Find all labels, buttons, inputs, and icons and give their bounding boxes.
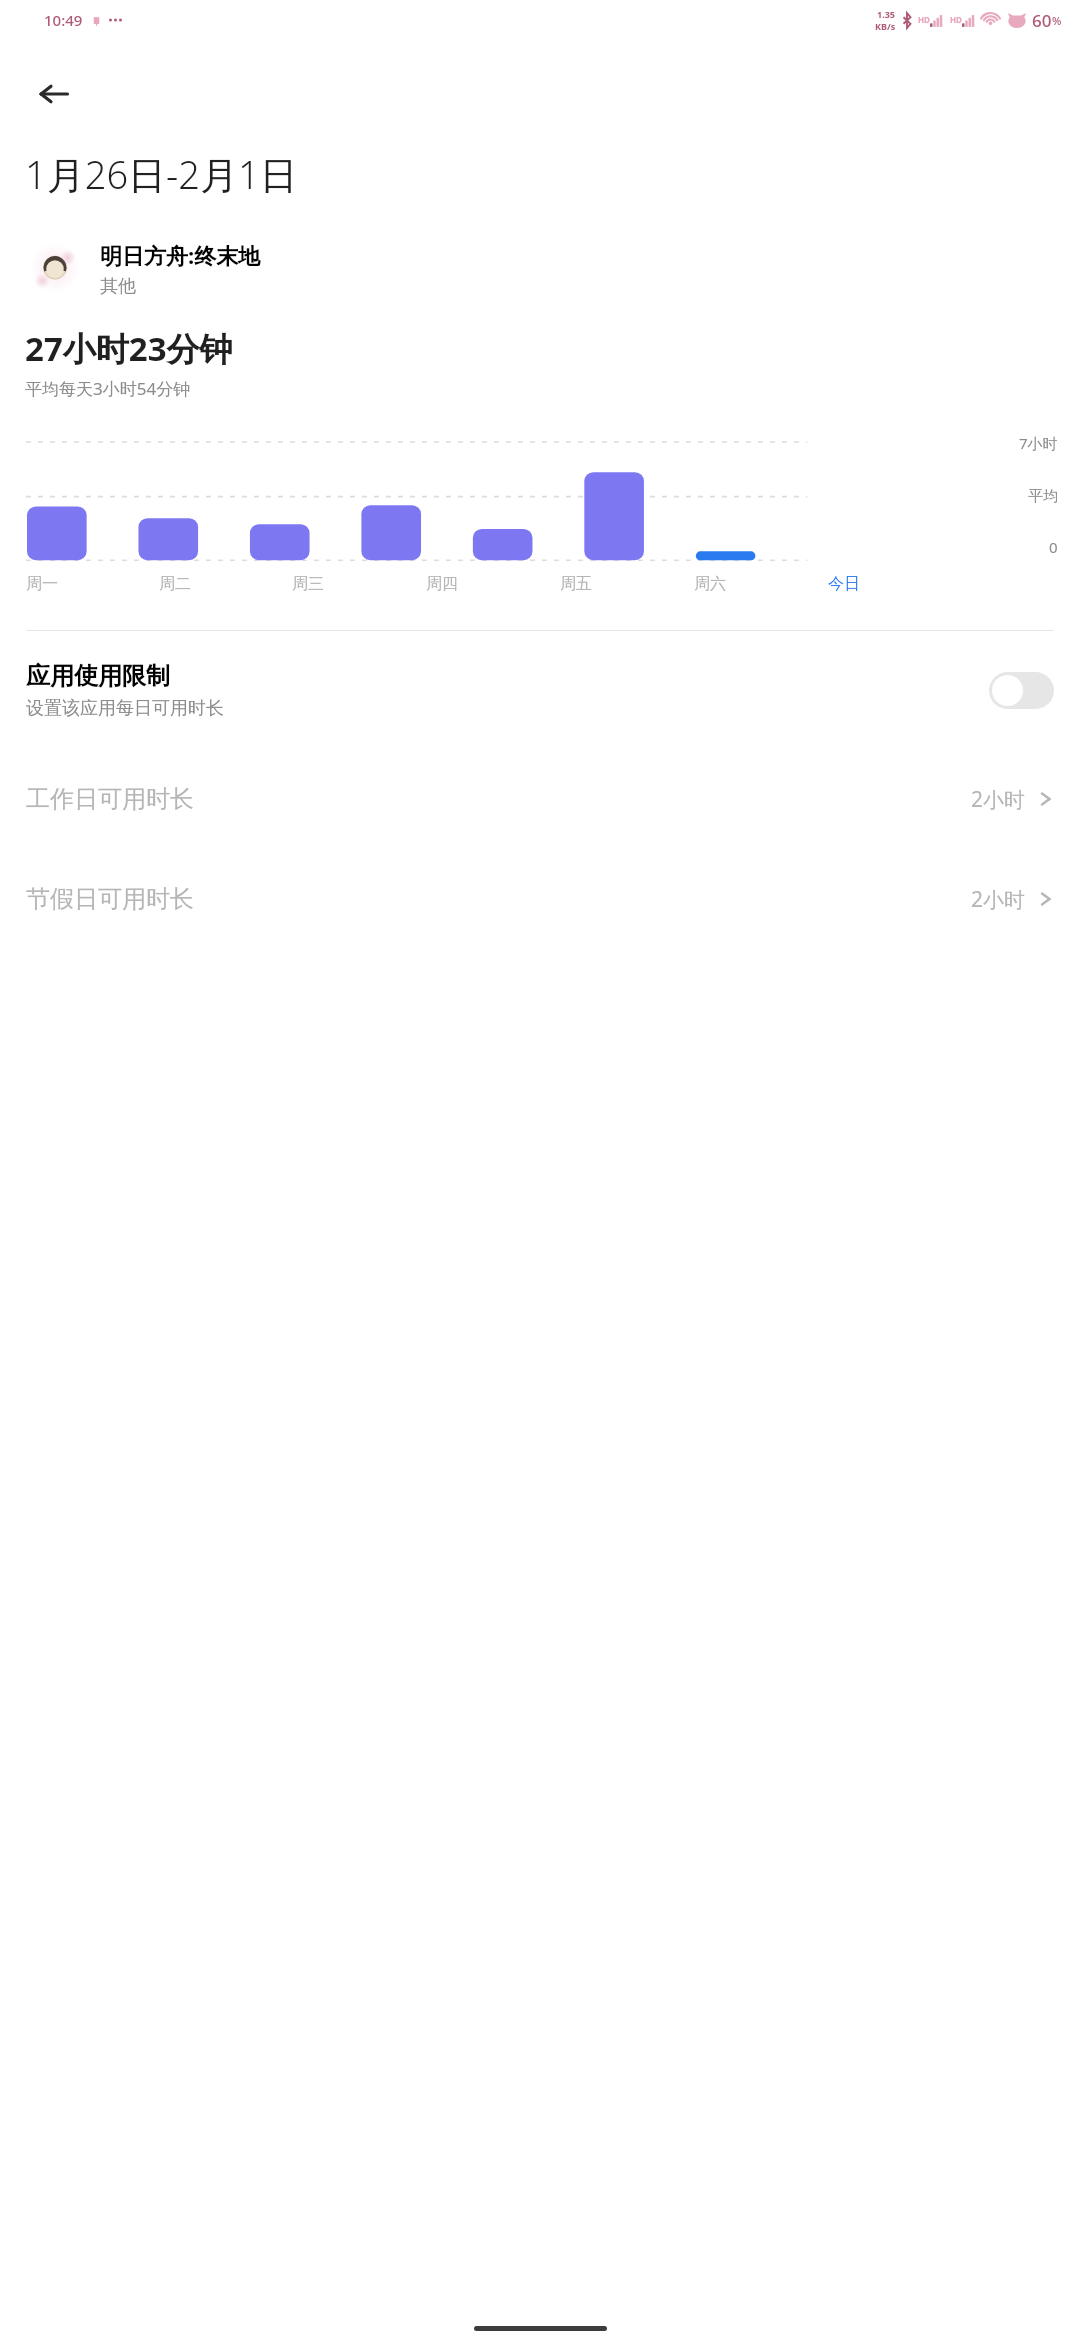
button[interactable]: 工作日可用时长	[0, 749, 1080, 849]
button[interactable]: 节假日可用时长	[0, 849, 1080, 949]
staticText: %	[1052, 13, 1062, 28]
staticText: 周二	[159, 574, 191, 594]
staticText: 应用使用限制	[26, 661, 170, 691]
button[interactable]: Back	[26, 66, 82, 122]
staticText: 1.35	[877, 8, 895, 20]
staticText: 10:49	[44, 10, 83, 30]
staticText: KB/s	[875, 20, 896, 32]
staticText: 周三	[292, 574, 324, 594]
staticText: 今日	[828, 574, 860, 594]
staticText: HD	[950, 14, 962, 25]
button[interactable]: 应用使用限制	[0, 631, 1080, 749]
staticText: 周四	[426, 574, 458, 594]
staticText: 设置该应用每日可用时长	[26, 697, 224, 720]
button[interactable]: 今日	[828, 574, 962, 594]
button[interactable]: 周五	[560, 574, 694, 594]
staticText: 明日方舟:终末地	[100, 240, 261, 270]
button[interactable]: 周六	[694, 574, 828, 594]
staticText: 2小时	[971, 885, 1026, 914]
staticText: HD	[918, 14, 930, 25]
staticText: 工作日可用时长	[26, 784, 971, 814]
button[interactable]: 周四	[426, 574, 560, 594]
staticText: 平均	[1028, 487, 1058, 506]
staticText: 7小时	[1019, 433, 1058, 453]
staticText: 周六	[694, 574, 726, 594]
staticText: 1月26日-2月1日	[25, 148, 298, 200]
staticText: 27小时23分钟	[25, 326, 233, 371]
staticText: 0	[1049, 537, 1058, 557]
button[interactable]: 周二	[159, 574, 292, 594]
staticText: 周五	[560, 574, 592, 594]
staticText: 60	[1032, 9, 1052, 32]
staticText: 周一	[26, 574, 58, 594]
staticText: 2小时	[971, 785, 1026, 814]
staticText: 平均每天3小时54分钟	[25, 377, 191, 400]
button[interactable]: 周一	[26, 574, 159, 594]
staticText: 节假日可用时长	[26, 884, 971, 914]
button[interactable]: 周三	[292, 574, 426, 594]
button[interactable]	[989, 672, 1054, 709]
staticText: 其他	[100, 275, 136, 298]
